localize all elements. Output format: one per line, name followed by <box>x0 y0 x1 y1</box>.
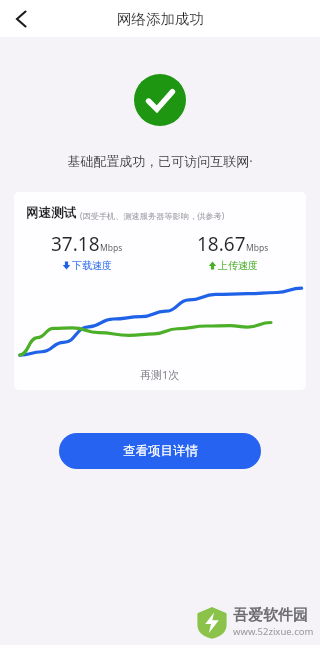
button[interactable]: Back <box>4 2 38 36</box>
staticText: Mbps <box>100 242 123 254</box>
staticText: 18.67 <box>197 231 246 257</box>
staticText: 网速测试 <box>26 205 76 221</box>
staticText: 吾爱软件园 <box>233 606 308 625</box>
staticText: Mbps <box>246 242 269 254</box>
staticText: www.52zixue.com <box>233 625 314 638</box>
staticText: 下载速度 <box>72 259 112 272</box>
staticText: 37.18 <box>51 231 100 257</box>
staticText: 上传速度 <box>218 259 258 272</box>
button[interactable]: 再测1次 <box>14 358 306 390</box>
staticText: 基础配置成功，已可访问互联网· <box>0 152 320 170</box>
staticText: (因受手机、测速服务器等影响，供参考) <box>80 210 225 221</box>
staticText: 再测1次 <box>140 367 180 382</box>
staticText: 网络添加成功 <box>117 10 204 28</box>
button[interactable]: 查看项目详情 <box>59 433 261 469</box>
staticText: 查看项目详情 <box>123 443 198 459</box>
